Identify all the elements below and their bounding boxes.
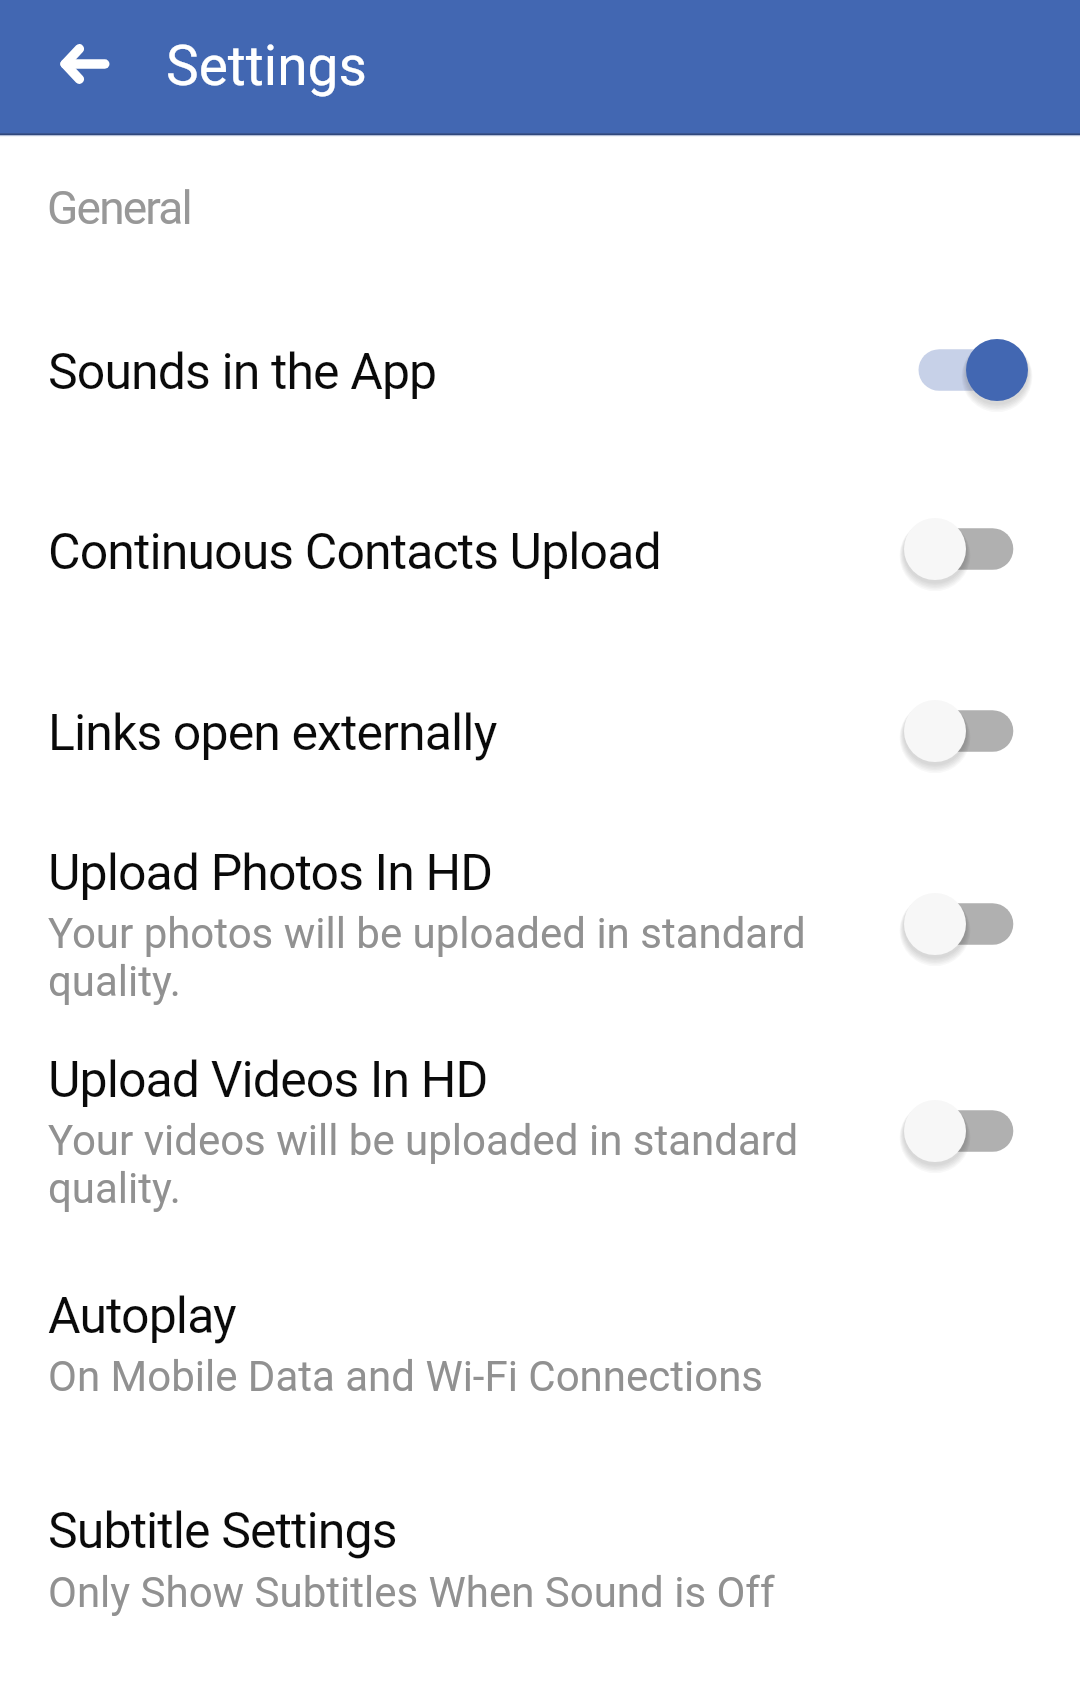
staticText: On Mobile Data and Wi-Fi Connections bbox=[48, 1352, 764, 1401]
button[interactable]: Setting disabled bbox=[880, 676, 1060, 786]
staticText: Your photos will be uploaded in standard… bbox=[48, 909, 806, 1006]
staticText: Your videos will be uploaded in standard… bbox=[48, 1116, 799, 1213]
button[interactable]: Subtitle Settings bbox=[0, 1491, 1080, 1641]
staticText: Upload Photos In HD bbox=[48, 844, 493, 903]
staticText: Upload Videos In HD bbox=[48, 1051, 488, 1110]
button[interactable]: Continuous Contacts Upload bbox=[0, 480, 1080, 620]
button[interactable]: Setting disabled bbox=[880, 1076, 1060, 1186]
button[interactable]: Setting enabled bbox=[880, 315, 1060, 425]
staticText: General bbox=[47, 181, 191, 235]
button[interactable]: Navigate back bbox=[20, 24, 108, 112]
staticText: Only Show Subtitles When Sound is Off bbox=[48, 1568, 775, 1617]
button[interactable]: Links open externally bbox=[0, 662, 1080, 802]
button[interactable]: Autoplay bbox=[0, 1276, 1080, 1426]
staticText: Continuous Contacts Upload bbox=[48, 523, 661, 582]
button[interactable]: Upload Photos In HD bbox=[0, 832, 1080, 1022]
staticText: Sounds in the App bbox=[48, 343, 437, 402]
button[interactable]: Sounds in the App bbox=[0, 300, 1080, 440]
button[interactable]: Setting disabled bbox=[880, 494, 1060, 604]
staticText: Autoplay bbox=[48, 1287, 236, 1346]
button[interactable]: Upload Videos In HD bbox=[0, 1039, 1080, 1229]
button[interactable]: Settings bbox=[166, 34, 367, 98]
button[interactable]: Setting disabled bbox=[880, 869, 1060, 979]
staticText: Links open externally bbox=[48, 704, 497, 763]
staticText: Subtitle Settings bbox=[48, 1502, 397, 1561]
